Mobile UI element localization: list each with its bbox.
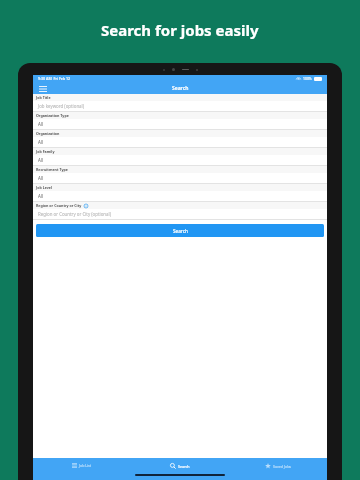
staticText: Organization <box>36 131 60 136</box>
staticText: 9:30 AM Fri Feb 12 <box>38 76 71 81</box>
staticText: 100% <box>303 76 312 81</box>
staticText: Organization Type <box>36 113 69 118</box>
button[interactable]: Open navigation menu <box>37 84 48 93</box>
staticText: All <box>38 157 44 163</box>
staticText: All <box>38 193 44 199</box>
staticText: All <box>38 175 44 181</box>
staticText: Search <box>172 85 189 92</box>
staticText: Region or Country or City <box>36 203 82 208</box>
button[interactable]: Organization <box>33 130 327 148</box>
button[interactable]: Saved Jobs <box>229 458 327 473</box>
staticText: Recruitment Type <box>36 167 68 172</box>
button[interactable]: Search <box>36 224 324 237</box>
button[interactable]: Job Title <box>33 94 327 112</box>
button[interactable]: Job Family <box>33 148 327 166</box>
staticText: Job Family <box>36 149 55 154</box>
button[interactable]: Recruitment Type <box>33 166 327 184</box>
staticText: Job List <box>79 463 92 468</box>
staticText: Search for jobs easily <box>101 20 259 40</box>
staticText: All <box>38 139 44 145</box>
button[interactable]: Organization Type <box>33 112 327 130</box>
staticText: Region or Country or City (optional) <box>38 211 111 217</box>
staticText: Job keyword (optional) <box>38 103 85 109</box>
button[interactable]: Search <box>131 458 229 473</box>
staticText: All <box>38 121 44 127</box>
button[interactable]: Job List <box>33 458 131 473</box>
staticText: Search <box>173 228 188 234</box>
staticText: Job Level <box>36 185 52 190</box>
staticText: Job Title <box>36 95 51 100</box>
button[interactable]: Job Level <box>33 184 327 202</box>
staticText: Saved Jobs <box>273 464 292 469</box>
staticText: Search <box>178 464 190 469</box>
button[interactable]: Region or Country or City <box>33 202 327 220</box>
